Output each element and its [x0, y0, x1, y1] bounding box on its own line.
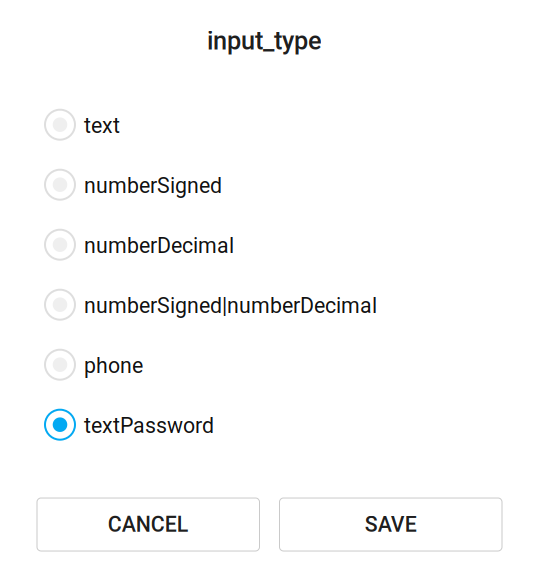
button[interactable]: text	[0, 95, 539, 155]
button[interactable]: numberSigned|numberDecimal	[0, 275, 539, 335]
button[interactable]: phone	[0, 335, 539, 395]
staticText: textPassword	[84, 413, 214, 438]
staticText: numberDecimal	[84, 233, 234, 258]
button[interactable]: CANCEL	[37, 498, 259, 551]
staticText: SAVE	[365, 512, 417, 537]
staticText: CANCEL	[108, 512, 189, 537]
staticText: input_type	[207, 26, 322, 56]
button[interactable]: SAVE	[279, 498, 502, 551]
button[interactable]: numberDecimal	[0, 215, 539, 275]
staticText: text	[84, 113, 120, 138]
button[interactable]: numberSigned	[0, 155, 539, 215]
staticText: numberSigned	[84, 173, 222, 198]
staticText: phone	[84, 353, 143, 378]
staticText: numberSigned|numberDecimal	[84, 293, 377, 318]
button[interactable]: textPassword	[0, 395, 539, 455]
